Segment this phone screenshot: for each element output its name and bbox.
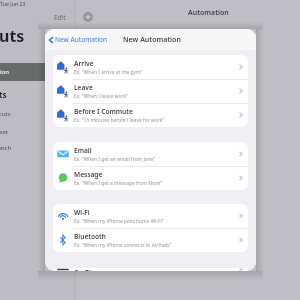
- button[interactable]: Leave: [53, 79, 248, 103]
- staticText: New Automation: [123, 35, 181, 45]
- staticText: Ex. “When my iPhone joins home Wi-Fi”: [74, 218, 164, 225]
- button[interactable]: Email: [53, 142, 248, 166]
- button[interactable]: Arrive: [53, 55, 248, 79]
- staticText: eet: [0, 128, 8, 136]
- button[interactable]: Before I Commute: [53, 103, 248, 127]
- button[interactable]: Message: [53, 166, 248, 190]
- staticText: uts: [0, 25, 25, 47]
- staticText: atch: [0, 144, 12, 152]
- staticText: CarPlay: [74, 268, 99, 271]
- button[interactable]: Wi-Fi: [53, 204, 248, 228]
- staticText: Before I Commute: [74, 107, 133, 116]
- staticText: Ex. “When I leave work”: [74, 93, 128, 100]
- staticText: Email: [74, 146, 92, 155]
- staticText: Ex. “When I arrive at the gym”: [74, 69, 143, 76]
- staticText: Message: [74, 170, 103, 179]
- staticText: Tue Jun 23: [0, 0, 26, 7]
- staticText: Ex. “When I get a message from Mom”: [74, 180, 162, 187]
- staticText: Automation: [188, 8, 229, 18]
- staticText: Edit: [54, 13, 66, 22]
- button[interactable]: Bluetooth: [53, 228, 248, 252]
- staticText: ion: [0, 68, 9, 76]
- staticText: Ex. “When my iPhone connects to AirPods”: [74, 242, 172, 249]
- staticText: cuts: [0, 110, 11, 118]
- staticText: ts: [0, 89, 7, 100]
- staticText: Ex. “When I get an email from Jane”: [74, 156, 155, 163]
- staticText: New Automation: [55, 35, 108, 44]
- button[interactable]: CarPlay: [53, 268, 248, 271]
- staticText: Ex. “15 minutes before I leave for work”: [74, 117, 165, 124]
- button[interactable]: New Automation: [47, 35, 108, 44]
- staticText: Arrive: [74, 59, 94, 68]
- staticText: Leave: [74, 83, 93, 92]
- staticText: Wi-Fi: [74, 208, 90, 217]
- staticText: Bluetooth: [74, 232, 106, 241]
